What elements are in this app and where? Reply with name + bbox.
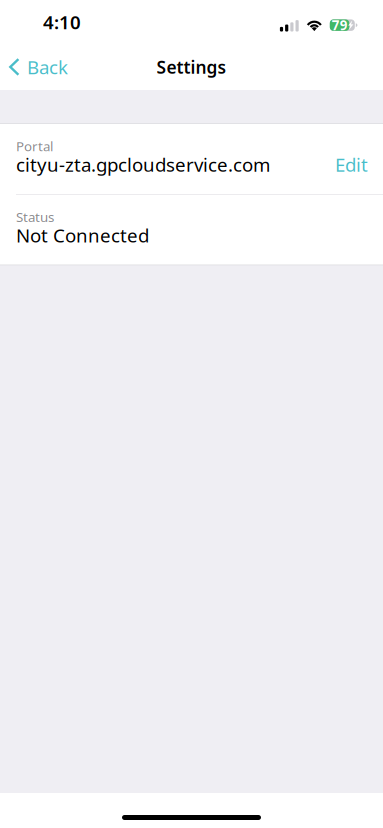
- staticText: Status: [16, 208, 54, 226]
- staticText: Settings: [156, 55, 226, 78]
- staticText: 4:10: [43, 10, 81, 34]
- staticText: Back: [27, 55, 68, 79]
- staticText: Portal: [16, 137, 53, 155]
- staticText: cityu-zta.gpcloudservice.com: [16, 152, 270, 177]
- staticText: Edit: [335, 152, 368, 177]
- button[interactable]: Back: [0, 48, 76, 86]
- staticText: 79: [332, 16, 348, 34]
- staticText: Not Connected: [16, 223, 149, 248]
- button[interactable]: Edit: [323, 155, 368, 177]
